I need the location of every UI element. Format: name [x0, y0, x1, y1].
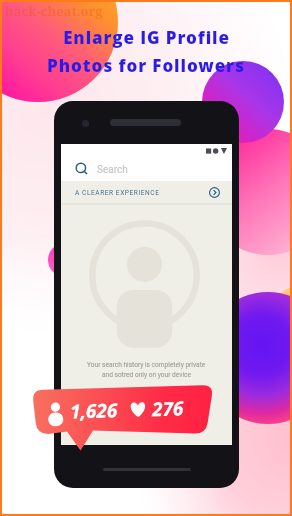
staticText: 1,626	[70, 397, 118, 424]
staticText: Enlarge IG Profile	[63, 26, 230, 49]
staticText: Photos for Followers	[47, 54, 245, 77]
staticText: 276	[152, 395, 184, 422]
staticText: and sotred only on your device	[102, 371, 191, 379]
other: Open	[209, 187, 220, 198]
button[interactable]: A CLEARER EXPERIENCE	[61, 181, 232, 204]
button[interactable]: 1,626	[31, 383, 215, 436]
staticText: A CLEARER EXPERIENCE	[75, 189, 160, 197]
staticText: Search	[97, 164, 128, 176]
staticText: hack-cheat.org	[5, 2, 103, 20]
staticText: Your search history is completely privat…	[87, 361, 206, 369]
button[interactable]: Search	[61, 144, 232, 181]
